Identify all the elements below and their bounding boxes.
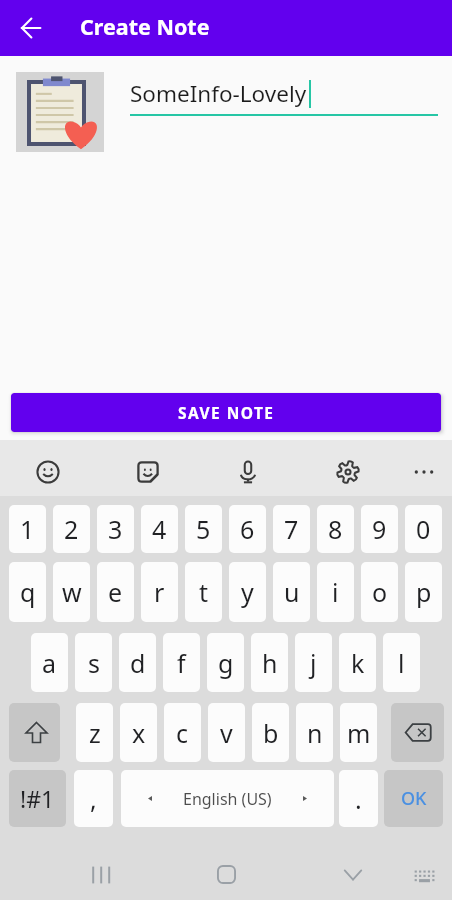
button[interactable]: . bbox=[339, 770, 378, 827]
staticText: 2 bbox=[64, 512, 79, 546]
button[interactable]: Backspace bbox=[391, 703, 444, 762]
staticText: , bbox=[90, 782, 97, 816]
button[interactable]: c bbox=[164, 703, 201, 762]
button[interactable]: English (US) bbox=[121, 770, 334, 827]
button[interactable]: 0 bbox=[405, 505, 442, 553]
staticText: u bbox=[284, 575, 300, 609]
staticText: . bbox=[355, 782, 362, 816]
staticText: 8 bbox=[328, 512, 343, 546]
staticText: 1 bbox=[20, 512, 35, 546]
button[interactable]: Switch keyboard bbox=[402, 854, 446, 898]
staticText: l bbox=[398, 646, 405, 680]
button[interactable]: r bbox=[141, 562, 178, 622]
staticText: 6 bbox=[240, 512, 255, 546]
staticText: j bbox=[310, 646, 317, 680]
staticText: r bbox=[154, 575, 165, 609]
staticText: 9 bbox=[372, 512, 387, 546]
button[interactable]: t bbox=[185, 562, 222, 622]
staticText: v bbox=[220, 716, 233, 750]
staticText: k bbox=[351, 646, 365, 680]
button[interactable]: l bbox=[383, 633, 420, 692]
staticText: t bbox=[199, 575, 209, 609]
staticText: m bbox=[347, 716, 371, 750]
button[interactable]: 7 bbox=[273, 505, 310, 553]
button[interactable]: m bbox=[340, 703, 377, 762]
button[interactable]: b bbox=[252, 703, 289, 762]
button[interactable]: Stickers bbox=[128, 452, 168, 492]
staticText: English (US) bbox=[183, 788, 272, 810]
staticText: g bbox=[218, 646, 234, 680]
staticText: OK bbox=[401, 786, 427, 811]
button[interactable]: 2 bbox=[53, 505, 90, 553]
staticText: c bbox=[176, 716, 189, 750]
button[interactable]: OK bbox=[384, 770, 443, 827]
staticText: e bbox=[108, 575, 123, 609]
staticText: !#1 bbox=[20, 783, 55, 814]
staticText: n bbox=[307, 716, 323, 750]
button[interactable]: !#1 bbox=[9, 770, 66, 827]
staticText: i bbox=[332, 575, 339, 609]
button[interactable]: 5 bbox=[185, 505, 222, 553]
button[interactable]: n bbox=[296, 703, 333, 762]
staticText: 5 bbox=[196, 512, 211, 546]
button[interactable]: i bbox=[317, 562, 354, 622]
button[interactable]: Home bbox=[204, 852, 248, 896]
staticText: 4 bbox=[152, 512, 167, 546]
staticText: x bbox=[132, 716, 146, 750]
button[interactable]: u bbox=[273, 562, 310, 622]
button[interactable] bbox=[16, 72, 104, 152]
button[interactable]: Voice input bbox=[228, 452, 268, 492]
button[interactable]: Note title bbox=[130, 72, 438, 116]
button[interactable]: o bbox=[361, 562, 398, 622]
staticText: o bbox=[372, 575, 388, 609]
button[interactable]: Emoji bbox=[28, 452, 68, 492]
staticText: d bbox=[130, 646, 146, 680]
staticText: 3 bbox=[108, 512, 123, 546]
button[interactable]: g bbox=[207, 633, 244, 692]
staticText: w bbox=[62, 575, 82, 609]
staticText: a bbox=[42, 646, 57, 680]
button[interactable]: SAVE NOTE bbox=[11, 393, 441, 432]
button[interactable]: 1 bbox=[9, 505, 46, 553]
button[interactable]: j bbox=[295, 633, 332, 692]
button[interactable]: e bbox=[97, 562, 134, 622]
button[interactable]: v bbox=[208, 703, 245, 762]
staticText: q bbox=[20, 575, 36, 609]
button[interactable]: k bbox=[339, 633, 376, 692]
button[interactable]: 9 bbox=[361, 505, 398, 553]
button[interactable]: p bbox=[405, 562, 442, 622]
staticText: y bbox=[241, 575, 254, 609]
staticText: SAVE NOTE bbox=[178, 402, 275, 423]
staticText: 0 bbox=[416, 512, 431, 546]
staticText: 7 bbox=[284, 512, 299, 546]
staticText: z bbox=[89, 716, 101, 750]
button[interactable]: Shift bbox=[9, 703, 60, 762]
button[interactable]: h bbox=[251, 633, 288, 692]
button[interactable]: s bbox=[75, 633, 112, 692]
staticText: s bbox=[88, 646, 100, 680]
button[interactable]: More options bbox=[404, 452, 444, 492]
button[interactable]: Settings bbox=[328, 452, 368, 492]
button[interactable]: f bbox=[163, 633, 200, 692]
button[interactable]: q bbox=[9, 562, 46, 622]
button[interactable]: w bbox=[53, 562, 90, 622]
button[interactable]: 3 bbox=[97, 505, 134, 553]
button[interactable]: 6 bbox=[229, 505, 266, 553]
staticText: p bbox=[416, 575, 432, 609]
button[interactable]: a bbox=[31, 633, 68, 692]
staticText: Create Note bbox=[80, 12, 210, 41]
staticText: SomeInfo-Lovely bbox=[130, 78, 307, 109]
staticText: f bbox=[177, 646, 186, 680]
button[interactable]: z bbox=[76, 703, 113, 762]
button[interactable]: x bbox=[120, 703, 157, 762]
staticText: b bbox=[263, 716, 279, 750]
staticText: h bbox=[262, 646, 278, 680]
button[interactable]: 4 bbox=[141, 505, 178, 553]
button[interactable]: 8 bbox=[317, 505, 354, 553]
button[interactable]: Hide keyboard bbox=[331, 853, 375, 897]
button[interactable]: Recents bbox=[78, 853, 122, 897]
button[interactable]: d bbox=[119, 633, 156, 692]
button[interactable]: Back bbox=[10, 7, 52, 49]
button[interactable]: y bbox=[229, 562, 266, 622]
button[interactable]: , bbox=[74, 770, 113, 827]
